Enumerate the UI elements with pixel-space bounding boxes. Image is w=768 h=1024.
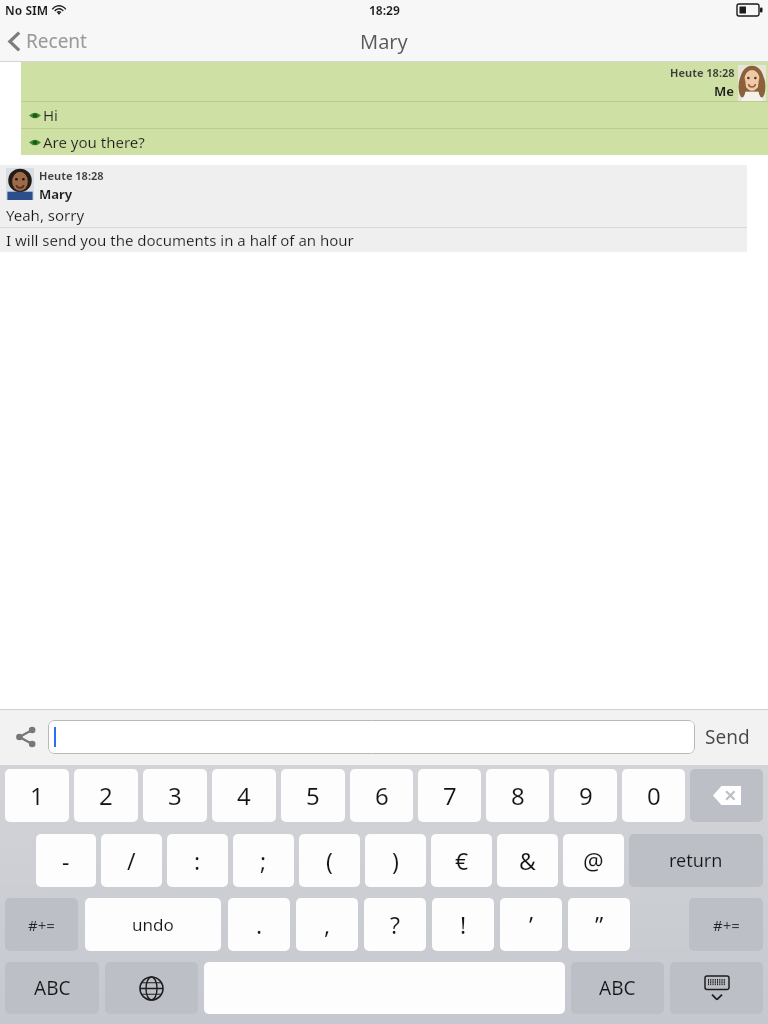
staticText: ; [260, 845, 267, 876]
button[interactable]: ; [233, 834, 294, 887]
button[interactable]: : [167, 834, 228, 887]
staticText: undo [132, 913, 174, 936]
button[interactable]: 4 [212, 769, 276, 822]
staticText: 5 [306, 779, 320, 812]
button[interactable]: 5 [281, 769, 345, 822]
button[interactable]: Share [8, 719, 44, 755]
button[interactable]: . [228, 898, 290, 951]
staticText: Mary [39, 185, 73, 203]
staticText: 3 [168, 779, 182, 812]
staticText: Heute 18:28 [670, 65, 735, 80]
button[interactable]: @ [563, 834, 624, 887]
button[interactable]: ABC [571, 962, 664, 1014]
button[interactable]: 9 [554, 769, 617, 822]
staticText: Are you there? [43, 132, 145, 152]
staticText: Yeah, sorry [6, 205, 85, 225]
button[interactable]: ? [364, 898, 426, 951]
staticText: ” [595, 909, 604, 940]
staticText: ( [326, 845, 333, 876]
button[interactable]: Hide keyboard [670, 962, 763, 1014]
staticText: return [669, 848, 723, 873]
staticText: 4 [237, 779, 251, 812]
button[interactable]: € [431, 834, 492, 887]
staticText: #+= [28, 915, 55, 935]
button[interactable]: ” [568, 898, 630, 951]
button[interactable]: Recent [0, 24, 97, 58]
staticText: - [62, 845, 70, 876]
staticText: 1 [30, 779, 44, 812]
staticText: , [324, 909, 331, 940]
staticText: ) [392, 845, 399, 876]
button[interactable]: Backspace [690, 769, 763, 822]
staticText: Me [714, 82, 735, 100]
button[interactable]: / [101, 834, 162, 887]
staticText: . [256, 909, 263, 940]
staticText: No SIM [5, 2, 48, 18]
button[interactable]: return [629, 834, 763, 887]
staticText: & [519, 845, 536, 876]
button[interactable]: 3 [143, 769, 207, 822]
staticText: 18:29 [369, 2, 400, 18]
button[interactable]: #+= [5, 898, 78, 951]
staticText: / [127, 845, 136, 876]
staticText: #+= [713, 915, 740, 935]
button[interactable]: ABC [5, 962, 99, 1014]
button[interactable]: 6 [350, 769, 413, 822]
button[interactable]: 8 [486, 769, 549, 822]
button[interactable]: - [36, 834, 96, 887]
button[interactable] [48, 720, 695, 754]
button[interactable]: 0 [622, 769, 685, 822]
button[interactable]: Heute 18:28 [21, 62, 768, 155]
button[interactable]: #+= [689, 898, 763, 951]
button[interactable]: ) [365, 834, 426, 887]
staticText: € [455, 845, 469, 876]
staticText: ABC [34, 975, 71, 1001]
staticText: Hi [43, 105, 58, 125]
staticText: 8 [511, 779, 525, 812]
button[interactable]: 7 [418, 769, 481, 822]
button[interactable]: ! [432, 898, 494, 951]
button[interactable]: ’ [500, 898, 562, 951]
staticText: Mary [360, 28, 408, 55]
staticText: ABC [599, 975, 636, 1001]
staticText: 9 [579, 779, 593, 812]
staticText: 0 [647, 779, 661, 812]
staticText: ! [460, 909, 467, 940]
staticText: I will send you the documents in a half … [6, 230, 354, 250]
button[interactable]: , [296, 898, 358, 951]
staticText: Heute 18:28 [39, 168, 104, 183]
staticText: Recent [26, 28, 87, 54]
button[interactable]: ( [299, 834, 360, 887]
staticText: ’ [529, 909, 534, 940]
staticText: ? [390, 909, 400, 940]
button[interactable]: 2 [74, 769, 138, 822]
button[interactable]: 1 [5, 769, 69, 822]
button[interactable]: & [497, 834, 558, 887]
button[interactable]: Heute 18:28 [0, 165, 747, 252]
button[interactable]: Change language [105, 962, 198, 1014]
staticText: : [194, 845, 201, 876]
button[interactable]: undo [85, 898, 221, 951]
staticText: 6 [375, 779, 389, 812]
button[interactable]: Send [695, 716, 760, 758]
staticText: @ [583, 845, 604, 876]
staticText: 2 [99, 779, 113, 812]
staticText: Send [705, 724, 750, 750]
staticText: 7 [443, 779, 457, 812]
